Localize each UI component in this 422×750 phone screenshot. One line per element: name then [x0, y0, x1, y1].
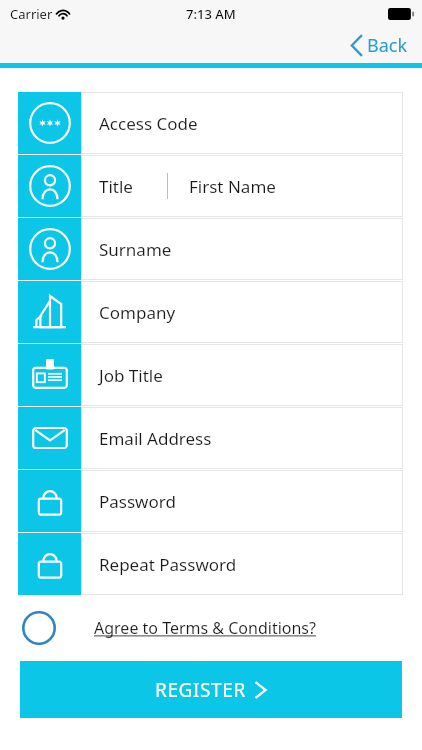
- staticText: Email Address: [99, 427, 212, 450]
- button[interactable]: Job Title: [18, 343, 403, 406]
- button[interactable]: Surname: [18, 217, 403, 280]
- button[interactable]: REGISTER: [20, 661, 402, 718]
- staticText: Title: [99, 175, 133, 198]
- button[interactable]: Back: [335, 29, 422, 62]
- button[interactable]: Agree to Terms & Conditions?: [94, 611, 316, 645]
- staticText: Company: [99, 301, 176, 324]
- button[interactable]: Repeat Password: [18, 532, 403, 595]
- button[interactable]: Email Address: [18, 406, 403, 469]
- staticText: Back: [367, 33, 408, 58]
- button[interactable]: Company: [18, 280, 403, 343]
- staticText: First Name: [189, 175, 276, 198]
- staticText: Job Title: [99, 364, 163, 387]
- staticText: Carrier: [10, 5, 53, 23]
- staticText: Repeat Password: [99, 553, 237, 576]
- staticText: 7:13 AM: [186, 5, 236, 23]
- staticText: Surname: [99, 238, 172, 261]
- staticText: Access Code: [99, 112, 198, 135]
- staticText: Password: [99, 490, 176, 513]
- button[interactable]: Access Code: [18, 91, 403, 154]
- staticText: Agree to Terms & Conditions?: [94, 617, 316, 639]
- button[interactable]: Title: [18, 154, 403, 217]
- button[interactable]: Password: [18, 469, 403, 532]
- staticText: REGISTER: [155, 677, 246, 703]
- button[interactable]: Agree to Terms and Conditions checkbox: [18, 607, 60, 649]
